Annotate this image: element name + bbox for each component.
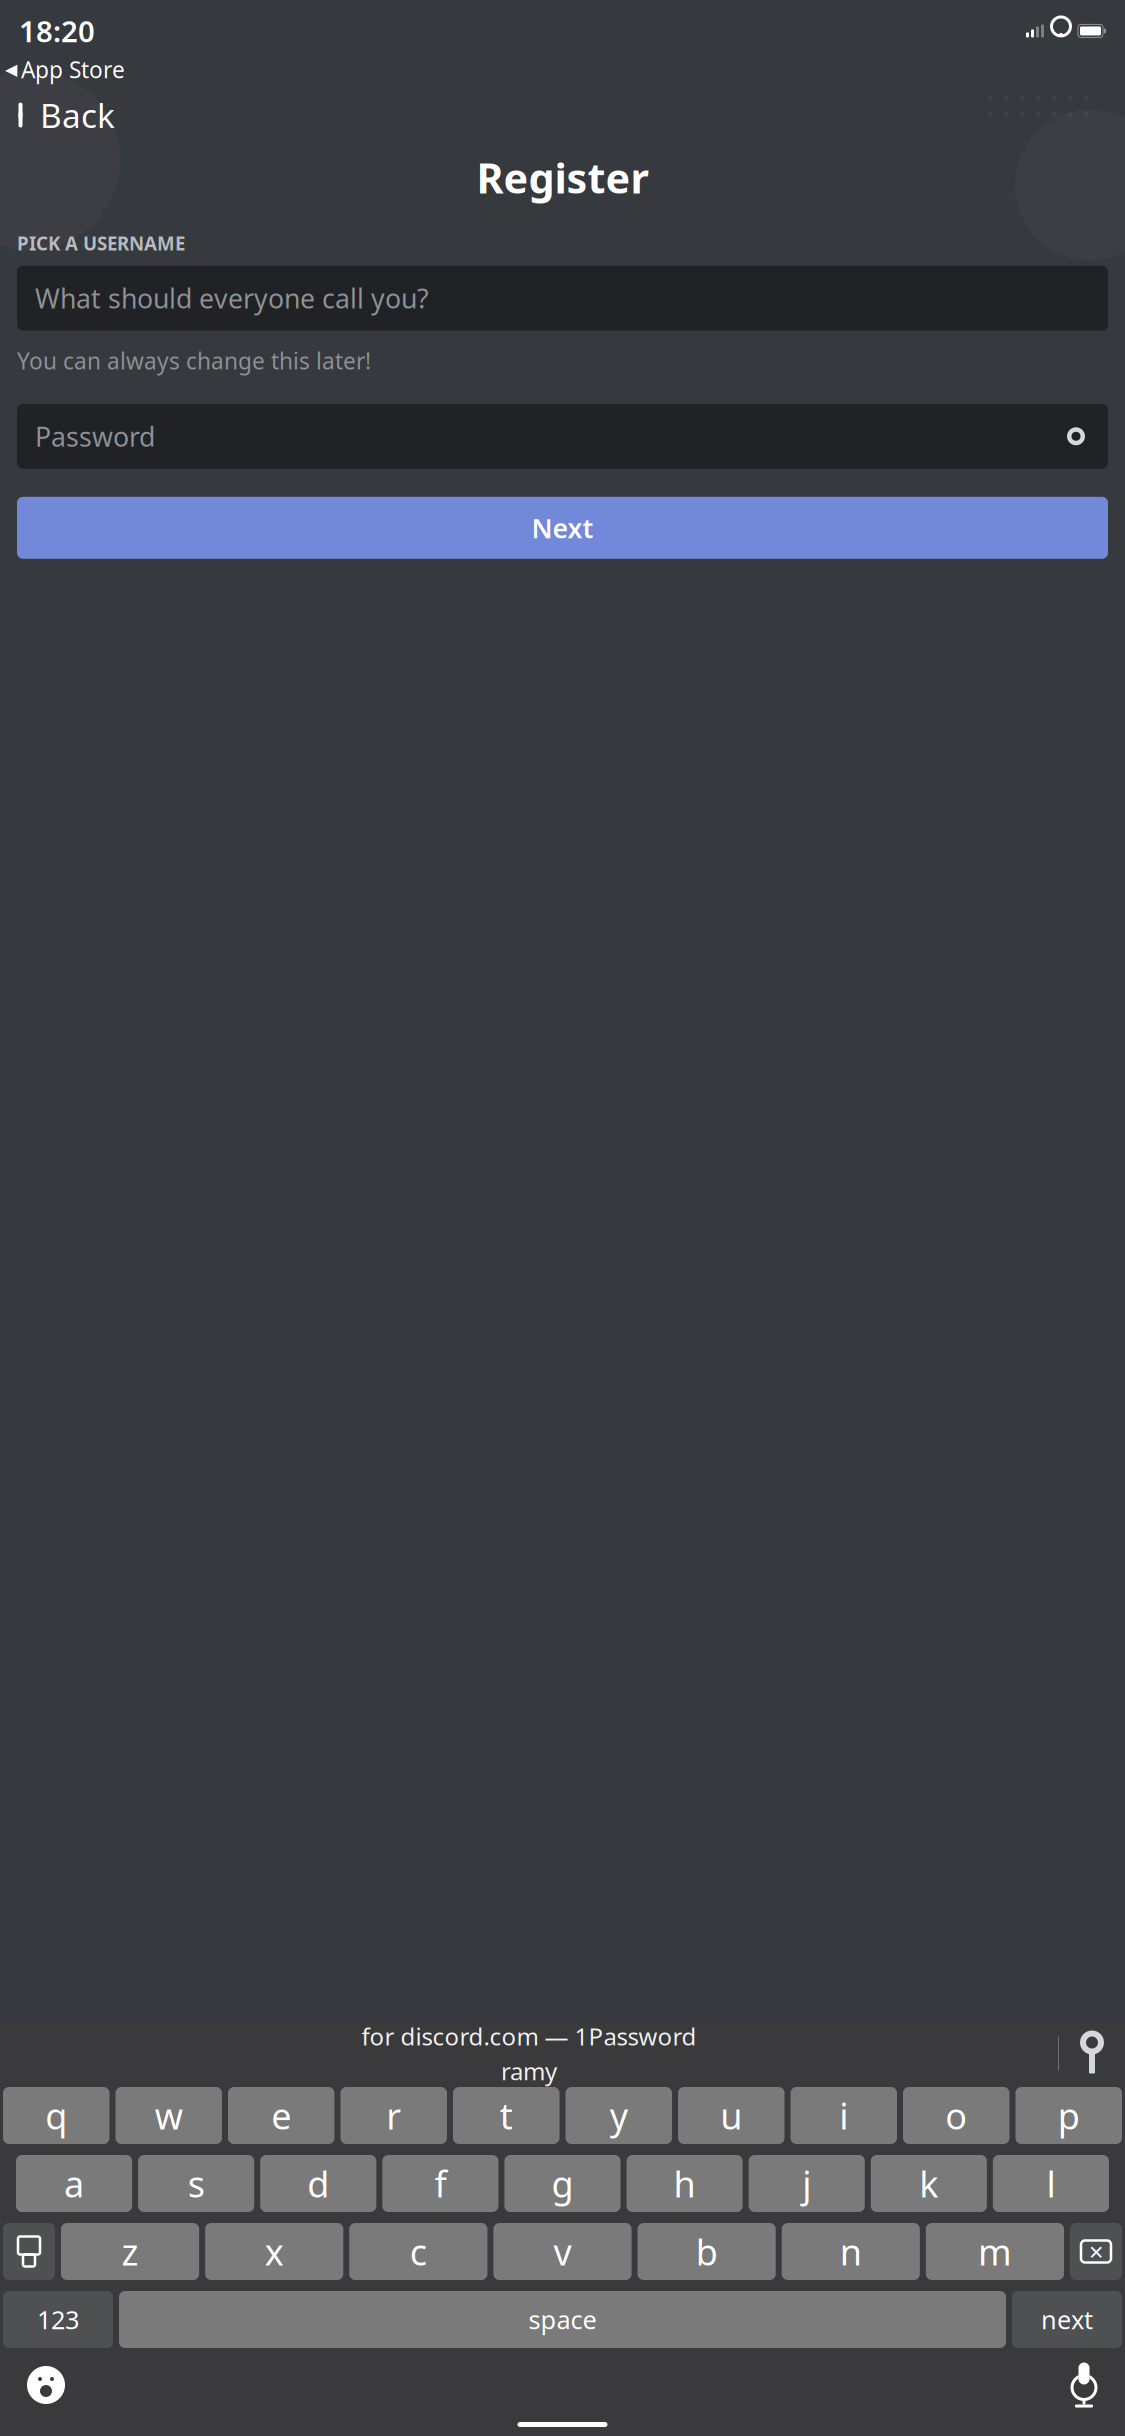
staticText: for discord.com — 1Password (361, 2020, 696, 2052)
button[interactable]: y (565, 2087, 672, 2144)
button[interactable]: Shift (3, 2223, 55, 2280)
staticText: Next (531, 510, 593, 545)
button[interactable]: j (749, 2155, 865, 2212)
button[interactable]: Delete (1070, 2223, 1122, 2280)
button[interactable]: s (138, 2155, 254, 2212)
button[interactable]: q (3, 2087, 109, 2144)
button[interactable]: e (228, 2087, 334, 2144)
staticText: f (434, 2160, 446, 2207)
button[interactable]: Emoji (19, 2358, 73, 2412)
staticText: You can always change this later! (17, 346, 371, 376)
staticText: g (551, 2160, 573, 2207)
button[interactable]: z (61, 2223, 199, 2280)
staticText: m (978, 2228, 1012, 2275)
button[interactable]: r (340, 2087, 447, 2144)
button[interactable]: a (16, 2155, 132, 2212)
staticText: q (45, 2092, 67, 2139)
button[interactable]: Next (17, 497, 1108, 559)
button[interactable]: o (903, 2087, 1009, 2144)
staticText: j (802, 2160, 811, 2207)
button[interactable]: 1Password (1081, 2032, 1125, 2074)
button[interactable]: v (493, 2223, 631, 2280)
staticText: x (265, 2228, 284, 2275)
button[interactable]: c (349, 2223, 487, 2280)
button[interactable]: i (790, 2087, 897, 2144)
button[interactable]: 123 (3, 2291, 113, 2348)
staticText: ◀ (5, 60, 17, 79)
button[interactable]: n (782, 2223, 920, 2280)
button[interactable]: d (260, 2155, 376, 2212)
button[interactable]: next (1012, 2291, 1122, 2348)
staticText: o (945, 2092, 967, 2139)
staticText: Password (35, 419, 155, 454)
staticText: u (720, 2092, 742, 2139)
button[interactable]: Dictation (1062, 2354, 1106, 2416)
staticText: × (1089, 2235, 1103, 2268)
button[interactable]: m (926, 2223, 1064, 2280)
staticText: d (307, 2160, 329, 2207)
staticText: ramy (501, 2055, 557, 2087)
staticText: w (155, 2092, 183, 2139)
button[interactable]: f (382, 2155, 498, 2212)
staticText: r (386, 2092, 401, 2139)
staticText: Register (476, 150, 648, 205)
staticText: PICK A USERNAME (17, 231, 185, 256)
button[interactable]: k (871, 2155, 987, 2212)
staticText: 123 (37, 2303, 79, 2336)
button[interactable]: Password (17, 404, 1108, 469)
button[interactable]: g (504, 2155, 620, 2212)
button[interactable]: x (205, 2223, 343, 2280)
staticText: a (64, 2160, 84, 2207)
button[interactable]: Back (4, 87, 125, 143)
staticText: 18:20 (19, 11, 95, 50)
staticText: l (1046, 2160, 1055, 2207)
staticText: space (528, 2303, 596, 2336)
staticText: What should everyone call you? (35, 280, 429, 316)
staticText: t (500, 2092, 513, 2139)
staticText: k (919, 2160, 938, 2207)
staticText: z (122, 2228, 139, 2275)
button[interactable]: space (119, 2291, 1006, 2348)
staticText: n (840, 2228, 862, 2275)
button[interactable]: w (115, 2087, 222, 2144)
button[interactable]: u (678, 2087, 784, 2144)
staticText: c (410, 2228, 427, 2275)
button[interactable]: What should everyone call you? (17, 266, 1108, 331)
button[interactable]: p (1015, 2087, 1122, 2144)
staticText: v (553, 2228, 571, 2275)
button[interactable]: l (993, 2155, 1109, 2212)
staticText: e (271, 2092, 291, 2139)
button[interactable]: b (638, 2223, 776, 2280)
staticText: h (674, 2160, 696, 2207)
staticText: s (188, 2160, 205, 2207)
staticText: b (696, 2228, 718, 2275)
staticText: Back (40, 93, 115, 137)
staticText: App Store (21, 54, 125, 84)
staticText: p (1058, 2092, 1080, 2139)
staticText: y (610, 2092, 628, 2139)
staticText: i (839, 2092, 848, 2139)
button[interactable]: h (627, 2155, 743, 2212)
button[interactable]: t (453, 2087, 559, 2144)
staticText: next (1041, 2303, 1093, 2336)
